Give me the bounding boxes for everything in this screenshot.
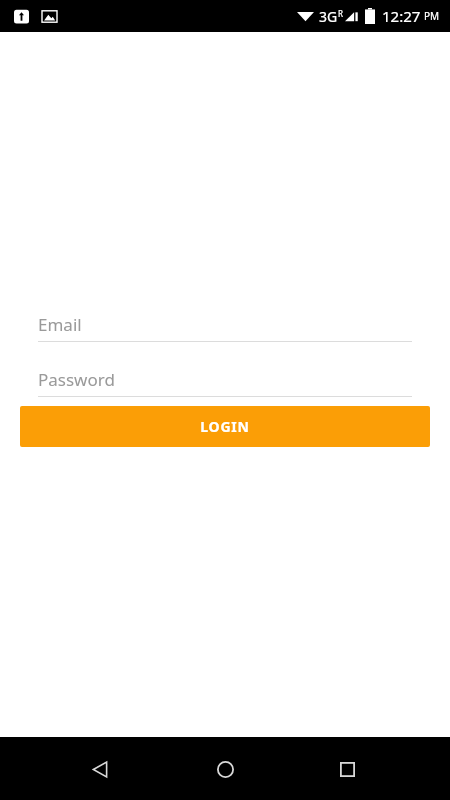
staticText: Email bbox=[38, 313, 82, 336]
staticText: R bbox=[338, 8, 343, 19]
staticText: Password bbox=[38, 368, 115, 391]
button[interactable]: Email bbox=[38, 308, 412, 342]
button[interactable]: LOGIN bbox=[20, 406, 430, 447]
button[interactable]: Home bbox=[201, 745, 249, 793]
button[interactable]: Recent apps bbox=[323, 745, 371, 793]
staticText: 3G bbox=[319, 7, 338, 26]
staticText: 12:27 bbox=[382, 6, 421, 26]
button[interactable]: Password bbox=[38, 363, 412, 397]
button[interactable]: Back bbox=[76, 745, 124, 793]
staticText: LOGIN bbox=[200, 417, 250, 436]
staticText: PM bbox=[424, 9, 440, 23]
